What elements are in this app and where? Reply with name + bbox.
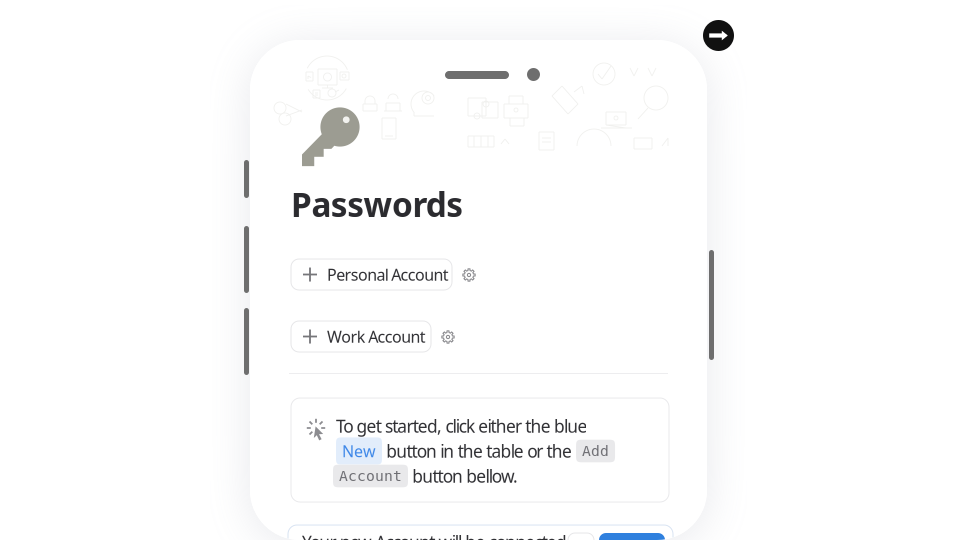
staticText: Work Account	[327, 326, 426, 347]
staticText: Personal Account	[327, 264, 449, 285]
staticText: Account	[339, 468, 402, 484]
button[interactable]: Settings	[441, 330, 455, 344]
button[interactable]: Personal Account	[291, 259, 452, 290]
staticText: Add	[582, 443, 609, 459]
staticText: button bellow.	[408, 464, 518, 487]
staticText: New	[342, 440, 376, 462]
staticText: Your new Account will be connected.	[302, 530, 571, 540]
button[interactable]: Continue	[703, 20, 734, 51]
button[interactable]: Work Account	[291, 321, 431, 352]
staticText: button in the table or the	[382, 439, 576, 462]
button[interactable]: Settings	[462, 268, 476, 282]
staticText: To get started, click either the blue	[336, 414, 587, 437]
staticText: Passwords	[291, 182, 463, 226]
